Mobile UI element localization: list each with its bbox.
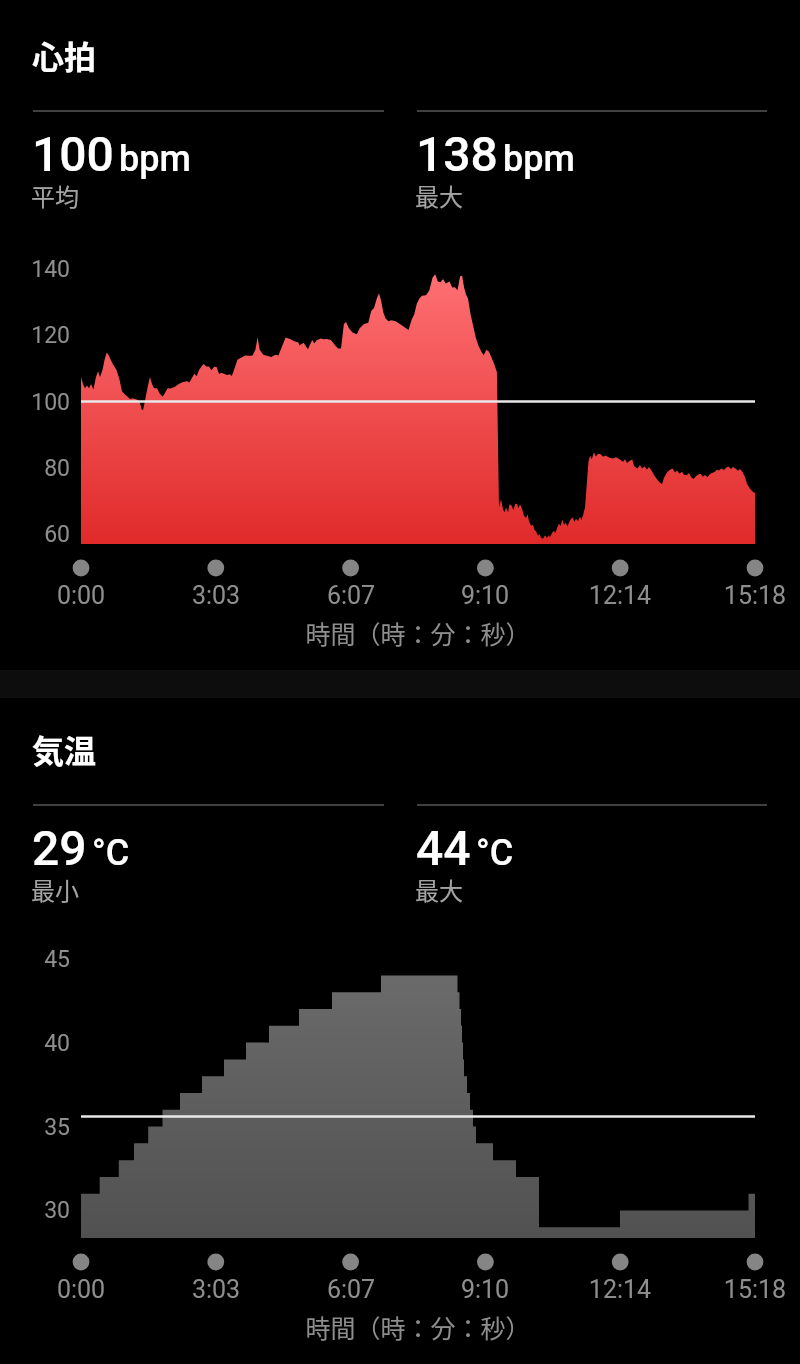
staticText: 40 <box>0 1030 70 1057</box>
staticText: 12:14 <box>550 581 690 610</box>
staticText: 100 <box>32 126 114 182</box>
staticText: °C <box>476 832 514 874</box>
staticText: bpm <box>503 138 575 180</box>
staticText: 60 <box>0 521 70 548</box>
staticText: 0:00 <box>11 581 151 610</box>
staticText: 100 <box>0 389 70 416</box>
staticText: 44 <box>416 820 471 876</box>
staticText: 140 <box>0 256 70 283</box>
button[interactable]: 最小 29 °C <box>0 798 400 908</box>
staticText: 心拍 <box>32 32 97 78</box>
button[interactable]: 最大 138 bpm <box>400 104 800 214</box>
staticText: 15:18 <box>685 1275 800 1304</box>
staticText: 3:03 <box>146 581 286 610</box>
staticText: 0:00 <box>11 1275 151 1304</box>
staticText: 9:10 <box>415 581 555 610</box>
staticText: 最大 <box>415 178 463 210</box>
staticText: 6:07 <box>281 1275 421 1304</box>
staticText: 35 <box>0 1114 70 1141</box>
button[interactable]: 気温 <box>0 694 800 1364</box>
button[interactable]: 最大 44 °C <box>400 798 800 908</box>
staticText: 気温 <box>32 726 97 772</box>
staticText: 29 <box>32 820 87 876</box>
staticText: 3:03 <box>146 1275 286 1304</box>
staticText: 最小 <box>31 872 79 904</box>
button[interactable]: 平均 100 bpm <box>0 104 400 214</box>
button[interactable]: 心拍 <box>0 0 800 670</box>
staticText: 平均 <box>31 178 79 210</box>
staticText: 138 <box>416 126 498 182</box>
staticText: 6:07 <box>281 581 421 610</box>
staticText: 9:10 <box>415 1275 555 1304</box>
staticText: bpm <box>119 138 191 180</box>
staticText: 時間（時：分：秒） <box>18 615 800 651</box>
staticText: 12:14 <box>550 1275 690 1304</box>
staticText: 80 <box>0 455 70 482</box>
staticText: 45 <box>0 946 70 973</box>
staticText: 15:18 <box>685 581 800 610</box>
staticText: 120 <box>0 322 70 349</box>
staticText: 最大 <box>415 872 463 904</box>
staticText: °C <box>92 832 130 874</box>
staticText: 30 <box>0 1197 70 1224</box>
staticText: 時間（時：分：秒） <box>18 1309 800 1345</box>
